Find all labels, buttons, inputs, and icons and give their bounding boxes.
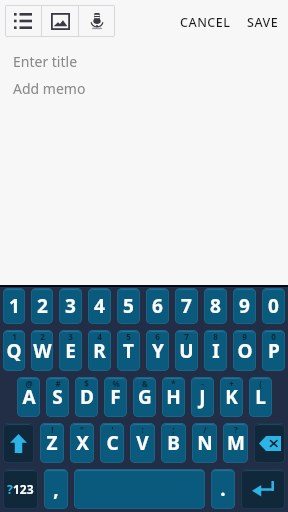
button[interactable]: . bbox=[211, 469, 235, 509]
staticText: 0 bbox=[271, 331, 276, 342]
button[interactable]: 5 bbox=[117, 330, 140, 371]
button[interactable]: % bbox=[104, 377, 127, 417]
staticText: M bbox=[227, 430, 245, 456]
button[interactable]: Space bbox=[74, 469, 205, 509]
staticText: * bbox=[171, 378, 176, 389]
staticText: R bbox=[93, 338, 106, 364]
button[interactable]: 7 bbox=[175, 288, 198, 324]
button[interactable]: ( bbox=[249, 377, 272, 417]
button[interactable]: & bbox=[133, 377, 156, 417]
staticText: U bbox=[179, 338, 194, 364]
staticText: Q bbox=[6, 338, 22, 364]
button[interactable]: 9 bbox=[233, 288, 256, 324]
staticText: 4 bbox=[97, 331, 102, 342]
staticText: " bbox=[80, 424, 84, 435]
staticText: 123 bbox=[13, 481, 34, 497]
staticText: K bbox=[225, 384, 238, 410]
staticText: 5 bbox=[123, 293, 134, 319]
staticText: # bbox=[55, 378, 61, 389]
staticText: ; bbox=[172, 424, 175, 435]
staticText: 9 bbox=[239, 293, 250, 319]
staticText: Y bbox=[152, 338, 164, 364]
staticText: SAVE bbox=[247, 14, 279, 31]
button[interactable]: ? bbox=[223, 423, 248, 463]
staticText: 1 bbox=[12, 331, 17, 342]
staticText: L bbox=[255, 384, 266, 410]
button[interactable]: Symbols bbox=[3, 469, 38, 509]
button[interactable]: " bbox=[70, 423, 94, 463]
button[interactable]: 2 bbox=[31, 288, 53, 324]
staticText: 7 bbox=[184, 331, 189, 342]
staticText: ! bbox=[51, 424, 54, 435]
staticText: B bbox=[167, 430, 180, 456]
staticText: W bbox=[33, 338, 52, 364]
button[interactable]: CANCEL bbox=[172, 10, 247, 35]
button[interactable]: 2 bbox=[31, 330, 53, 371]
button[interactable]: ! bbox=[40, 423, 64, 463]
button[interactable]: 0 bbox=[262, 288, 285, 324]
staticText: 3 bbox=[65, 293, 76, 319]
staticText: . bbox=[220, 476, 226, 502]
button[interactable]: Shift bbox=[3, 423, 34, 463]
button[interactable]: ; bbox=[161, 423, 186, 463]
button[interactable]: Enter bbox=[241, 469, 285, 509]
button[interactable]: Backspace bbox=[254, 423, 285, 463]
button[interactable]: 6 bbox=[146, 288, 169, 324]
staticText: CANCEL bbox=[180, 14, 231, 31]
button[interactable]: - bbox=[191, 377, 214, 417]
staticText: - bbox=[201, 378, 204, 389]
staticText: 6 bbox=[155, 331, 160, 342]
button[interactable]: 3 bbox=[59, 330, 82, 371]
staticText: : bbox=[141, 424, 144, 435]
staticText: 4 bbox=[94, 293, 105, 319]
button[interactable]: 0 bbox=[262, 330, 285, 371]
button[interactable]: 8 bbox=[204, 330, 227, 371]
button[interactable]: Voice input bbox=[79, 5, 115, 37]
staticText: 3 bbox=[68, 331, 73, 342]
button[interactable]: 4 bbox=[88, 330, 111, 371]
staticText: 7 bbox=[181, 293, 192, 319]
staticText: 2 bbox=[40, 331, 45, 342]
staticText: + bbox=[229, 378, 234, 389]
button[interactable]: @ bbox=[17, 377, 40, 417]
staticText: N bbox=[197, 430, 213, 456]
staticText: V bbox=[136, 430, 149, 456]
button[interactable]: * bbox=[162, 377, 185, 417]
staticText: 9 bbox=[242, 331, 247, 342]
button[interactable]: 1 bbox=[3, 330, 25, 371]
staticText: % bbox=[112, 378, 120, 389]
staticText: T bbox=[123, 338, 134, 364]
staticText: S bbox=[52, 384, 63, 410]
button[interactable]: Insert image bbox=[42, 5, 78, 37]
staticText: P bbox=[268, 338, 280, 364]
staticText: 8 bbox=[213, 331, 218, 342]
button[interactable]: 3 bbox=[59, 288, 82, 324]
button[interactable]: 1 bbox=[3, 288, 25, 324]
staticText: 1 bbox=[9, 293, 20, 319]
other: Shift bbox=[3, 423, 34, 463]
staticText: , bbox=[53, 476, 59, 502]
staticText: G bbox=[138, 384, 152, 410]
staticText: / bbox=[203, 424, 207, 435]
staticText: F bbox=[110, 384, 121, 410]
button[interactable]: # bbox=[46, 377, 69, 417]
staticText: & bbox=[142, 378, 148, 389]
other: Enter bbox=[241, 469, 285, 509]
button[interactable]: Checklist bbox=[5, 5, 41, 37]
button[interactable]: $ bbox=[75, 377, 98, 417]
button[interactable]: 9 bbox=[233, 330, 256, 371]
button[interactable]: ' bbox=[100, 423, 124, 463]
button[interactable]: 5 bbox=[117, 288, 140, 324]
button[interactable]: 7 bbox=[175, 330, 198, 371]
staticText: 2 bbox=[37, 293, 48, 319]
button[interactable]: 6 bbox=[146, 330, 169, 371]
button[interactable]: SAVE bbox=[247, 10, 288, 35]
button[interactable]: 8 bbox=[204, 288, 227, 324]
button[interactable]: + bbox=[220, 377, 243, 417]
staticText: H bbox=[166, 384, 181, 410]
button[interactable]: / bbox=[192, 423, 217, 463]
button[interactable]: : bbox=[130, 423, 155, 463]
staticText: ' bbox=[111, 424, 114, 435]
button[interactable]: , bbox=[44, 469, 68, 509]
button[interactable]: 4 bbox=[88, 288, 111, 324]
